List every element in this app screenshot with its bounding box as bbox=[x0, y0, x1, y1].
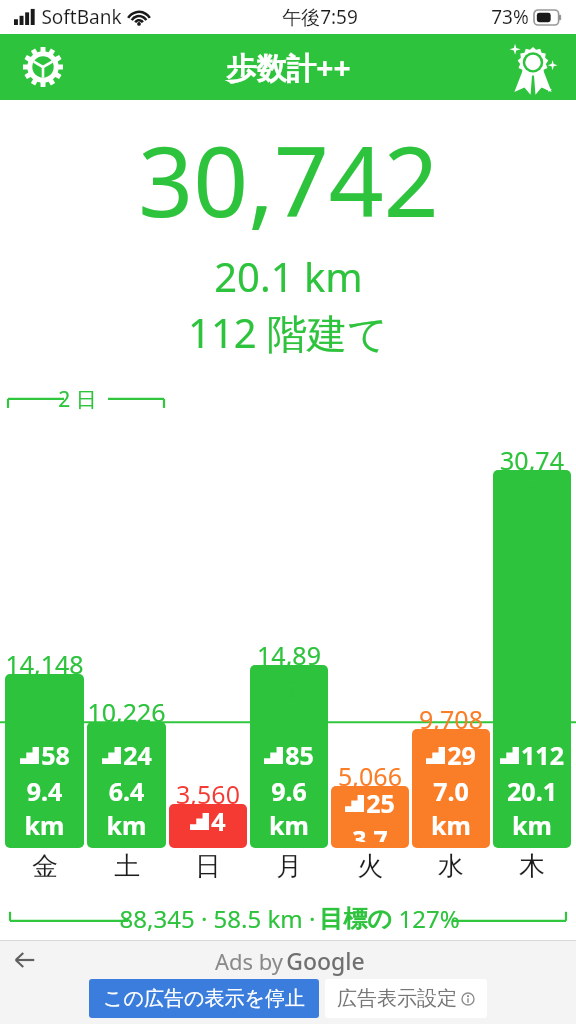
button[interactable]: この広告の表示を停止 bbox=[89, 979, 319, 1018]
button[interactable]: 112 bbox=[493, 470, 571, 848]
button[interactable]: 58 bbox=[5, 674, 84, 848]
staticText: 30,742 bbox=[493, 443, 571, 511]
staticText: 58 bbox=[41, 738, 70, 772]
staticText: 火 bbox=[357, 850, 383, 883]
staticText: 3,560 bbox=[176, 777, 240, 811]
staticText: 30,742 bbox=[138, 114, 439, 245]
staticText: この広告の表示を停止 bbox=[103, 986, 305, 1011]
button[interactable]: 25 bbox=[331, 786, 409, 848]
staticText: 日 bbox=[195, 850, 221, 883]
staticText: 歩数計++ bbox=[226, 47, 351, 88]
button[interactable]: 広告表示設定 bbox=[325, 979, 487, 1018]
staticText: 5,066 bbox=[338, 759, 402, 793]
staticText: 金 bbox=[32, 850, 58, 883]
staticText: 木 bbox=[519, 850, 545, 883]
staticText: 9.4 km bbox=[5, 774, 84, 842]
staticText: 88,345 · 58.5 km · bbox=[116, 902, 319, 935]
staticText: 73% bbox=[491, 4, 529, 30]
staticText: 3.7 km bbox=[331, 822, 409, 842]
staticText: 14,895 bbox=[250, 638, 328, 706]
staticText: 10,226 bbox=[87, 695, 166, 729]
staticText: 2 日 bbox=[58, 385, 97, 411]
staticText: 9.6 km bbox=[250, 774, 328, 842]
button[interactable]: Achievements bbox=[504, 38, 562, 96]
button[interactable]: Settings bbox=[14, 38, 72, 96]
staticText: 29 bbox=[447, 738, 476, 772]
staticText: 9,708 bbox=[419, 702, 483, 736]
staticText: 水 bbox=[438, 850, 464, 883]
staticText: SoftBank bbox=[41, 4, 122, 30]
staticText: 午後7:59 bbox=[282, 4, 358, 30]
staticText: Google bbox=[286, 945, 365, 976]
staticText: 127% bbox=[392, 902, 460, 935]
staticText: 112 bbox=[521, 738, 564, 772]
staticText: 20.1 km bbox=[214, 249, 363, 303]
staticText: 7.0 km bbox=[412, 774, 490, 842]
staticText: 20.1 km bbox=[493, 774, 571, 842]
button[interactable]: Back bbox=[6, 941, 44, 979]
button[interactable]: 24 bbox=[87, 722, 166, 848]
button[interactable]: 29 bbox=[412, 729, 490, 848]
staticText: 14,148 bbox=[5, 647, 84, 681]
staticText: 目標の bbox=[319, 904, 392, 934]
staticText: 土 bbox=[114, 850, 140, 883]
staticText: Ads by bbox=[212, 946, 286, 976]
staticText: 24 bbox=[123, 738, 152, 772]
staticText: 広告表示設定 bbox=[337, 986, 457, 1011]
button[interactable]: 85 bbox=[250, 665, 328, 848]
staticText: 25 bbox=[366, 786, 395, 820]
button[interactable]: 4 bbox=[169, 804, 247, 848]
staticText: 85 bbox=[285, 738, 314, 772]
staticText: 112 階建て bbox=[188, 305, 388, 360]
staticText: 6.4 km bbox=[87, 774, 166, 842]
staticText: 月 bbox=[276, 850, 302, 883]
staticText: 4 bbox=[211, 804, 226, 838]
